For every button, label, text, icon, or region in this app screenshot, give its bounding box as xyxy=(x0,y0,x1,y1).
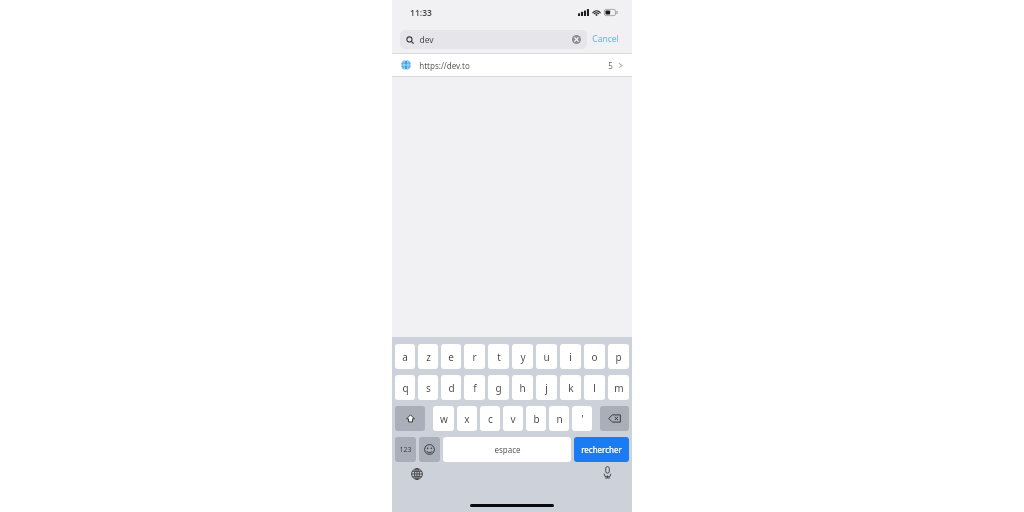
staticText: m xyxy=(614,381,624,395)
staticText: espace xyxy=(494,444,521,455)
button[interactable]: https://dev.to xyxy=(392,54,632,76)
button[interactable]: t xyxy=(488,344,509,369)
button[interactable]: l xyxy=(584,375,605,400)
button[interactable]: e xyxy=(441,344,461,369)
button[interactable]: Change keyboard language xyxy=(410,467,423,480)
staticText: l xyxy=(593,381,596,395)
staticText: k xyxy=(568,381,574,395)
button[interactable]: Dictate with microphone xyxy=(601,466,614,479)
button[interactable]: Cancel xyxy=(587,29,624,49)
staticText: f xyxy=(473,381,477,395)
button[interactable]: z xyxy=(418,344,438,369)
button[interactable]: v xyxy=(503,406,523,431)
staticText: dev xyxy=(419,34,434,46)
staticText: a xyxy=(402,350,408,364)
staticText: e xyxy=(448,350,454,364)
staticText: j xyxy=(545,381,548,395)
staticText: Cancel xyxy=(592,33,619,45)
staticText: c xyxy=(488,412,493,426)
staticText: r xyxy=(472,350,477,364)
button[interactable]: Clear search text xyxy=(572,35,581,44)
button[interactable]: Backspace xyxy=(600,406,629,431)
button[interactable]: x xyxy=(457,406,477,431)
button[interactable]: dev xyxy=(400,30,587,49)
button[interactable]: d xyxy=(441,375,461,400)
button[interactable]: o xyxy=(584,344,605,369)
staticText: d xyxy=(448,381,455,395)
staticText: 123 xyxy=(399,445,412,455)
staticText: h xyxy=(519,381,526,395)
button[interactable]: a xyxy=(395,344,415,369)
staticText: b xyxy=(533,412,540,426)
staticText: v xyxy=(510,412,516,426)
button[interactable]: i xyxy=(560,344,581,369)
button[interactable]: y xyxy=(512,344,533,369)
button[interactable]: f xyxy=(464,375,485,400)
staticText: s xyxy=(426,381,431,395)
button[interactable]: p xyxy=(608,344,629,369)
staticText: 5 xyxy=(608,60,613,71)
staticText: ' xyxy=(581,412,584,426)
button[interactable]: b xyxy=(526,406,546,431)
staticText: p xyxy=(615,350,622,364)
staticText: w xyxy=(440,412,448,426)
staticText: n xyxy=(556,412,563,426)
button[interactable]: Shift xyxy=(395,406,425,431)
staticText: t xyxy=(497,350,501,364)
button[interactable]: h xyxy=(512,375,533,400)
staticText: q xyxy=(402,381,409,395)
button[interactable]: g xyxy=(488,375,509,400)
staticText: g xyxy=(495,381,502,395)
button[interactable]: r xyxy=(464,344,485,369)
button[interactable]: u xyxy=(536,344,557,369)
staticText: i xyxy=(569,350,572,364)
staticText: 11:33 xyxy=(410,7,432,19)
button[interactable]: j xyxy=(536,375,557,400)
staticText: o xyxy=(591,350,598,364)
staticText: z xyxy=(426,350,431,364)
staticText: u xyxy=(543,350,550,364)
button[interactable]: 123 xyxy=(395,437,416,462)
button[interactable]: s xyxy=(418,375,438,400)
staticText: rechercher xyxy=(581,444,622,455)
button[interactable]: n xyxy=(549,406,569,431)
button[interactable]: k xyxy=(560,375,581,400)
staticText: x xyxy=(464,412,470,426)
button[interactable]: espace xyxy=(443,437,571,462)
button[interactable]: ' xyxy=(572,406,592,431)
button[interactable]: m xyxy=(608,375,629,400)
button[interactable]: Emoji keyboard xyxy=(419,437,440,462)
button[interactable]: q xyxy=(395,375,415,400)
button[interactable]: rechercher xyxy=(574,437,629,462)
staticText: y xyxy=(520,350,526,364)
button[interactable]: c xyxy=(480,406,500,431)
button[interactable]: w xyxy=(433,406,454,431)
staticText: https://dev.to xyxy=(419,60,470,71)
